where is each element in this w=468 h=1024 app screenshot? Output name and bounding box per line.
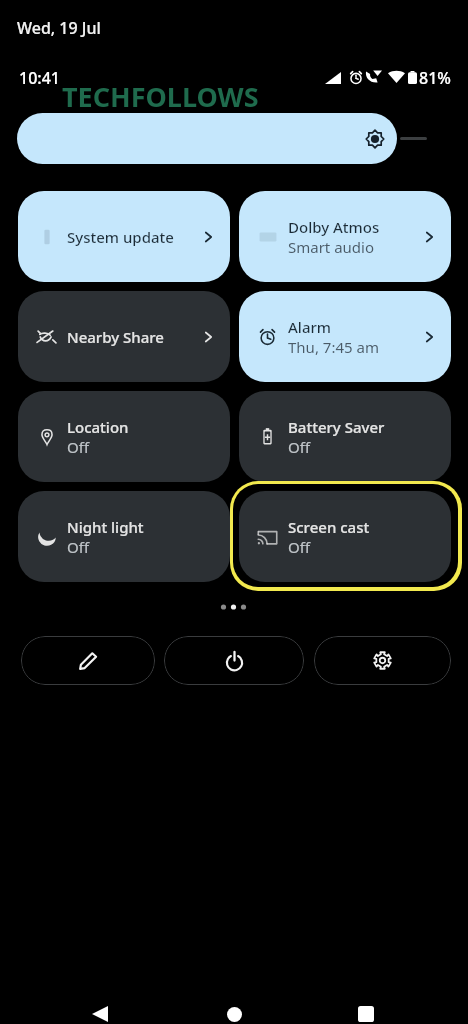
button[interactable]: Home — [210, 980, 258, 1024]
staticText: Off — [67, 437, 90, 457]
staticText: Off — [288, 437, 311, 457]
button[interactable]: Recent apps — [342, 980, 390, 1024]
staticText: 10:41 — [19, 67, 60, 89]
staticText: Off — [67, 537, 90, 557]
button[interactable]: Back — [76, 980, 124, 1024]
staticText: Battery Saver — [288, 417, 385, 437]
button[interactable]: Brightness — [17, 113, 397, 164]
staticText: Night light — [67, 517, 144, 537]
staticText: Smart audio — [288, 237, 375, 257]
button[interactable]: Screen cast — [239, 491, 451, 582]
staticText: Off — [288, 537, 311, 557]
staticText: Thu, 7:45 am — [288, 337, 379, 357]
button[interactable]: Edit — [21, 636, 155, 685]
button[interactable]: Location — [18, 391, 230, 482]
staticText: Dolby Atmos — [288, 217, 380, 237]
button[interactable]: System update — [18, 191, 230, 282]
staticText: Screen cast — [288, 517, 370, 537]
button[interactable]: Night light — [18, 491, 230, 582]
staticText: Wed, 19 Jul — [17, 17, 101, 39]
button[interactable]: Dolby Atmos — [239, 191, 451, 282]
button[interactable]: Nearby Share — [18, 291, 230, 382]
staticText: TECHFOLLOWS — [62, 78, 259, 115]
button[interactable]: Settings — [314, 636, 451, 685]
staticText: Nearby Share — [67, 327, 164, 347]
button[interactable]: Alarm — [239, 291, 451, 382]
button[interactable]: Power — [164, 636, 304, 685]
staticText: Location — [67, 417, 129, 437]
staticText: 81% — [419, 67, 451, 85]
staticText: Alarm — [288, 317, 332, 337]
staticText: System update — [67, 227, 174, 247]
button[interactable]: Battery Saver — [239, 391, 451, 482]
